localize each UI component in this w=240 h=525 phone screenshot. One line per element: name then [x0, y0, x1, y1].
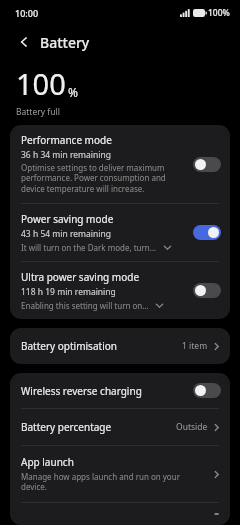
staticText: Battery full	[16, 106, 60, 118]
button[interactable]: Battery optimisation	[10, 328, 230, 364]
staticText: Outside	[176, 421, 208, 433]
button[interactable]: Expand	[153, 299, 165, 311]
staticText: Battery	[40, 33, 90, 52]
button[interactable]: Wireless reverse charging	[10, 373, 230, 408]
staticText: Optimise settings to deliver maximum per…	[21, 162, 166, 195]
staticText: Manage how apps launch and run on your d…	[21, 471, 180, 493]
staticText: 10:00	[15, 7, 39, 19]
staticText: 100%	[208, 7, 230, 19]
button[interactable]: Toggle off	[193, 383, 221, 398]
staticText: 100	[16, 64, 66, 103]
button[interactable]: Battery percentage	[10, 409, 230, 445]
staticText: Battery percentage	[21, 420, 176, 434]
staticText: Power saving mode	[21, 212, 114, 226]
button[interactable]: Toggle on	[193, 225, 221, 240]
staticText: It will turn on the Dark mode, turn…	[21, 242, 157, 253]
staticText: 43 h 54 min remaining	[21, 228, 111, 240]
button[interactable]: More battery settings	[10, 503, 230, 525]
button[interactable]: Toggle off	[193, 283, 221, 298]
staticText: Ultra power saving mode	[21, 270, 140, 284]
button[interactable]: Expand	[161, 241, 173, 253]
staticText: Performance mode	[21, 133, 112, 147]
staticText: %	[68, 84, 78, 100]
staticText: 1 item	[182, 340, 208, 352]
button[interactable]: App launch	[10, 446, 230, 502]
button[interactable]: Performance mode	[10, 125, 230, 203]
staticText: App launch	[21, 455, 74, 469]
staticText: 118 h 19 min remaining	[21, 286, 116, 298]
button[interactable]: Toggle off	[193, 157, 221, 172]
button[interactable]: Ultra power saving mode	[10, 262, 230, 319]
button[interactable]: Back	[13, 31, 35, 53]
staticText: 36 h 34 min remaining	[21, 149, 111, 161]
staticText: Battery optimisation	[21, 339, 182, 353]
staticText: Enabling this setting will turn on…	[21, 300, 149, 311]
staticText: Wireless reverse charging	[21, 384, 193, 398]
button[interactable]: Power saving mode	[10, 204, 230, 261]
